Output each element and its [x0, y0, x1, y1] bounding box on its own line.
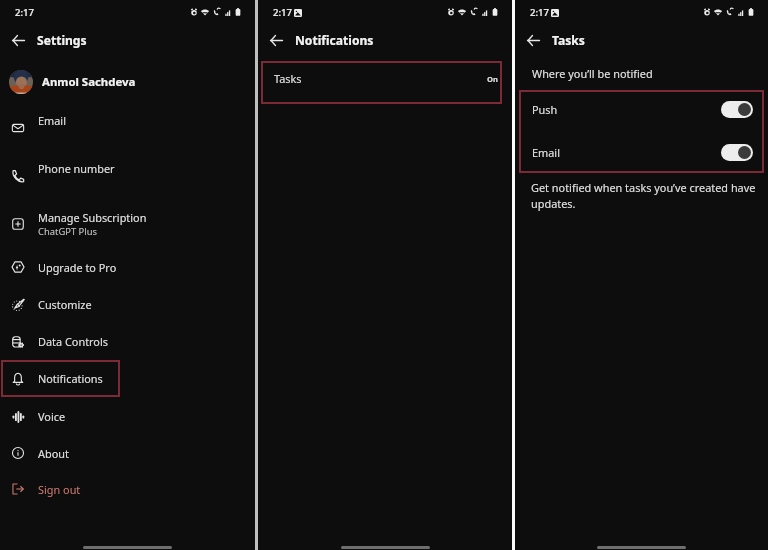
button[interactable]: Push: [515, 90, 768, 128]
button[interactable]: Back: [264, 28, 288, 52]
button[interactable]: Tasks: [258, 61, 512, 104]
staticText: Phone number: [38, 161, 115, 176]
button[interactable]: [0, 249, 255, 285]
staticText: Push: [532, 102, 558, 117]
staticText: About: [38, 446, 69, 461]
button[interactable]: [0, 287, 255, 323]
staticText: Upgrade to Pro: [38, 260, 117, 275]
staticText: Where you’ll be notified: [532, 66, 653, 81]
staticText: Data Controls: [38, 334, 108, 349]
staticText: Notifications: [295, 32, 374, 48]
staticText: Settings: [37, 32, 87, 48]
staticText: On: [487, 74, 498, 84]
staticText: Voice: [38, 409, 66, 424]
button[interactable]: [0, 361, 255, 397]
button[interactable]: [0, 158, 255, 194]
button[interactable]: [0, 471, 255, 507]
staticText: Email: [38, 113, 66, 128]
button[interactable]: Email: [515, 133, 768, 171]
staticText: Notifications: [38, 371, 103, 386]
staticText: Manage Subscription: [38, 210, 147, 225]
button[interactable]: [0, 399, 255, 435]
staticText: Anmol Sachdeva: [42, 74, 136, 90]
staticText: ChatGPT Plus: [38, 225, 97, 238]
button[interactable]: [0, 64, 255, 100]
staticText: Tasks: [552, 32, 585, 48]
button[interactable]: [0, 206, 255, 242]
staticText: Sign out: [38, 482, 81, 497]
button[interactable]: Back: [6, 28, 30, 52]
staticText: Customize: [38, 297, 92, 312]
button[interactable]: [0, 435, 255, 471]
staticText: 2:17: [530, 6, 550, 19]
staticText: Tasks: [274, 71, 302, 86]
staticText: 2:17: [273, 6, 293, 19]
button[interactable]: Back: [521, 28, 545, 52]
button[interactable]: [0, 324, 255, 360]
staticText: Get notified when tasks you’ve created h…: [531, 180, 761, 211]
staticText: 2:17: [15, 6, 35, 19]
staticText: Email: [532, 145, 560, 160]
button[interactable]: [0, 110, 255, 146]
